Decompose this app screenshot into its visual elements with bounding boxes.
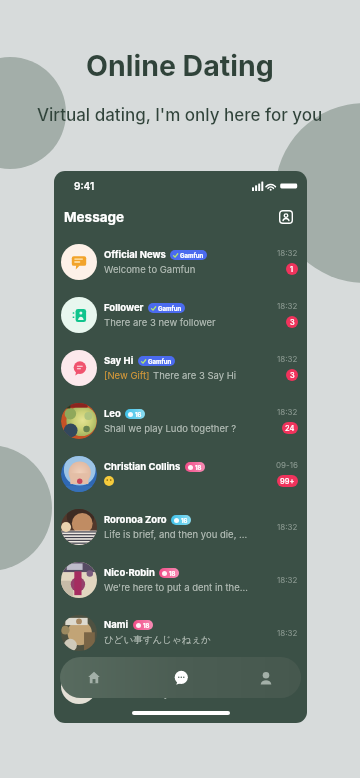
staticText: 24 xyxy=(285,424,295,433)
staticText: Leo xyxy=(104,408,121,419)
staticText: Shall we play Ludo together ? xyxy=(104,423,237,434)
staticText: ひどい事すんじゃねぇか xyxy=(104,634,211,646)
staticText: 18:32 xyxy=(277,248,298,258)
button[interactable]: Home xyxy=(60,657,128,698)
button[interactable]: Nami xyxy=(54,606,307,659)
staticText: There are 3 Say Hi xyxy=(153,370,237,381)
staticText: Life is brief, and then you die, … xyxy=(104,529,248,540)
staticText: Message xyxy=(64,209,125,225)
button[interactable]: Contacts xyxy=(275,206,297,228)
staticText: 3 xyxy=(290,318,295,327)
staticText: Gamfun xyxy=(148,358,172,365)
staticText: 18:32 xyxy=(277,628,298,638)
button[interactable]: Official News xyxy=(54,235,307,288)
staticText: 18 xyxy=(169,570,176,577)
button[interactable]: Profile xyxy=(231,657,301,698)
staticText: 18:32 xyxy=(277,407,298,417)
button[interactable]: Leo xyxy=(54,394,307,447)
button[interactable]: Usopp xyxy=(54,659,307,712)
staticText: Official News xyxy=(104,249,166,260)
button[interactable]: Say Hi xyxy=(54,341,307,394)
staticText: 16 xyxy=(135,411,142,418)
staticText: Nico·Robin xyxy=(104,567,155,578)
staticText: We're here to put a dent in the… xyxy=(104,582,248,593)
staticText: Christian Collins xyxy=(104,461,181,472)
staticText: Welcome to Gamfun xyxy=(104,264,196,275)
staticText: 3 xyxy=(290,371,295,380)
staticText: 1 xyxy=(290,265,294,274)
button[interactable]: Roronoa Zoro xyxy=(54,500,307,553)
button[interactable]: Messages xyxy=(152,657,210,698)
staticText: 18 xyxy=(143,622,150,629)
staticText: Gamfun xyxy=(158,305,182,312)
staticText: Nice to meet you xyxy=(104,688,181,699)
staticText: 09-16 xyxy=(276,460,298,470)
staticText: 18:32 xyxy=(277,522,298,532)
staticText: Online Dating xyxy=(86,48,274,82)
staticText: Say Hi xyxy=(104,355,134,366)
staticText: Virtual dating, I'm only here for you xyxy=(37,105,323,126)
staticText: There are 3 new follower xyxy=(104,317,216,328)
staticText: Nami xyxy=(104,619,129,630)
staticText: Follower xyxy=(104,302,144,313)
staticText: 99+ xyxy=(280,477,295,486)
staticText: 9:41 xyxy=(74,180,95,192)
staticText: 16 xyxy=(181,517,188,524)
staticText: 18:32 xyxy=(277,575,298,585)
staticText: 18 xyxy=(195,464,202,471)
staticText: Roronoa Zoro xyxy=(104,514,167,525)
button[interactable]: Christian Collins xyxy=(54,447,307,500)
button[interactable]: Nico·Robin xyxy=(54,553,307,606)
button[interactable]: Follower xyxy=(54,288,307,341)
staticText: 18:32 xyxy=(277,354,298,364)
staticText: [New Gift] xyxy=(104,370,153,381)
staticText: Gamfun xyxy=(180,252,204,259)
staticText: 18:32 xyxy=(277,301,298,311)
